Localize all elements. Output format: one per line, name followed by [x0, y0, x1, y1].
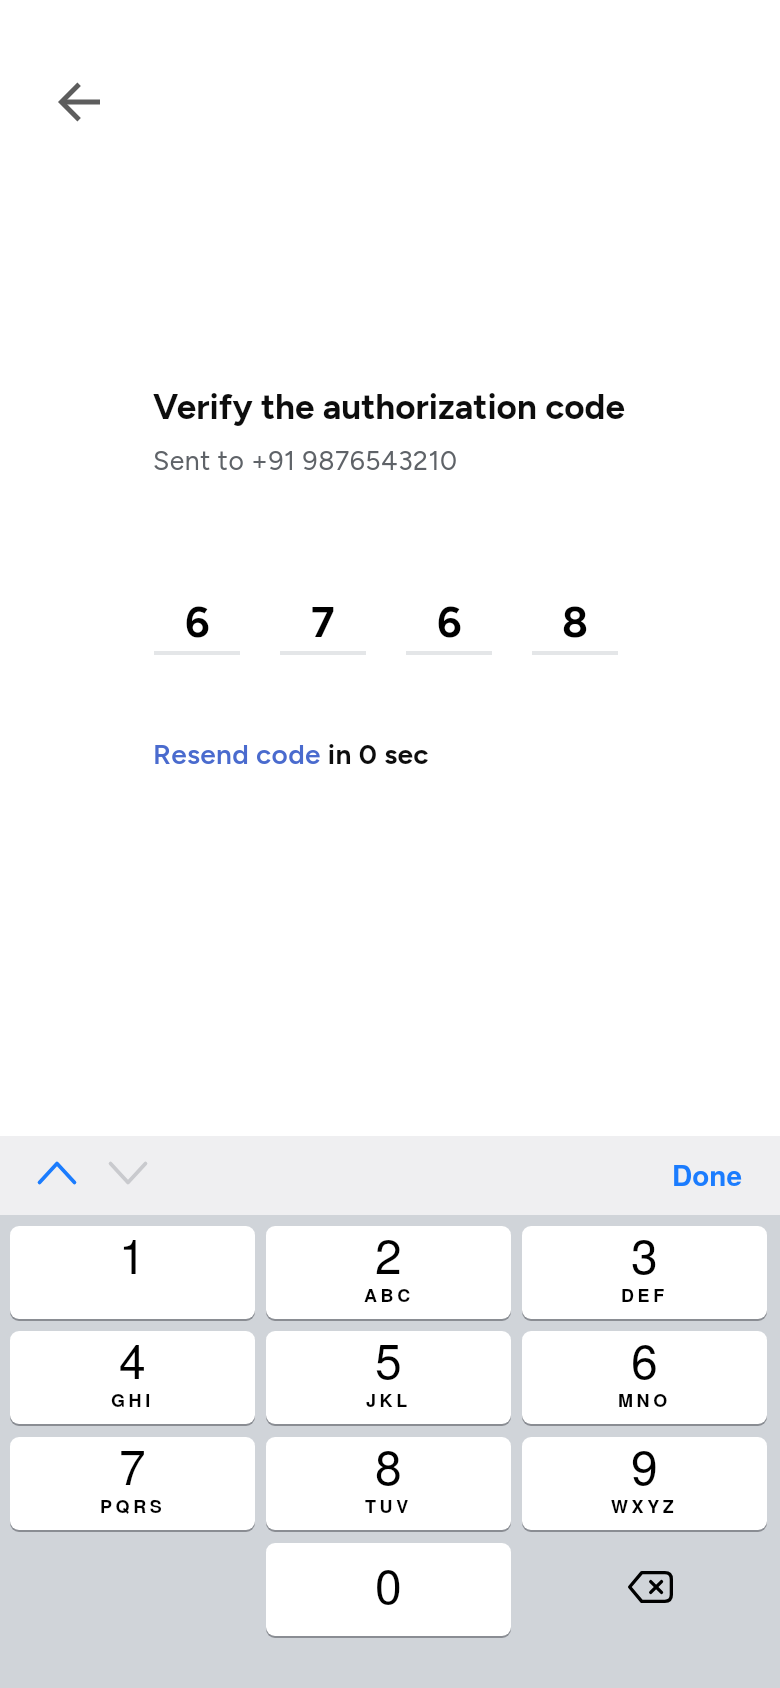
staticText: ABC: [364, 1282, 414, 1308]
staticText: Resend code in 0 sec: [153, 737, 429, 771]
staticText: 8: [375, 1437, 402, 1499]
staticText: 0: [375, 1549, 402, 1618]
staticText: 4: [119, 1331, 146, 1393]
button[interactable]: Back: [39, 62, 119, 142]
staticText: 7: [119, 1437, 146, 1499]
button[interactable]: Backspace: [528, 1540, 773, 1634]
staticText: 3: [631, 1226, 658, 1288]
staticText: 5: [375, 1331, 402, 1393]
staticText: 1: [119, 1226, 146, 1288]
button[interactable]: 7: [10, 1437, 255, 1530]
button[interactable]: 2: [266, 1226, 511, 1319]
button[interactable]: 6: [154, 597, 240, 655]
button[interactable]: 8: [266, 1437, 511, 1530]
button[interactable]: 7: [280, 597, 366, 655]
staticText: JKL: [366, 1387, 411, 1413]
staticText: Verify the authorization code: [153, 386, 625, 428]
staticText: 6: [437, 597, 462, 648]
button[interactable]: Next field: [90, 1146, 166, 1200]
button[interactable]: 4: [10, 1331, 255, 1424]
button[interactable]: 8: [532, 597, 618, 655]
button[interactable]: Previous field: [19, 1146, 95, 1200]
staticText: 9: [631, 1437, 658, 1499]
button[interactable]: 1: [10, 1226, 255, 1319]
button[interactable]: 6: [406, 597, 492, 655]
staticText: 6: [185, 597, 210, 648]
button[interactable]: Resend code in 0 sec: [153, 737, 429, 771]
staticText: MNO: [618, 1387, 671, 1413]
staticText: PQRS: [100, 1493, 166, 1519]
button[interactable]: 6: [522, 1331, 767, 1424]
staticText: 8: [562, 597, 589, 648]
staticText: WXYZ: [611, 1493, 678, 1519]
button[interactable]: 3: [522, 1226, 767, 1319]
button[interactable]: 0: [266, 1543, 511, 1636]
button[interactable]: 5: [266, 1331, 511, 1424]
staticText: Sent to +91 9876543210: [153, 445, 458, 477]
staticText: DEF: [621, 1282, 668, 1308]
staticText: 2: [375, 1226, 402, 1288]
button[interactable]: 9: [522, 1437, 767, 1530]
staticText: GHI: [111, 1387, 154, 1413]
staticText: TUV: [365, 1493, 412, 1519]
staticText: Done: [672, 1154, 743, 1194]
staticText: 6: [631, 1331, 658, 1393]
button[interactable]: Done: [655, 1146, 760, 1205]
staticText: 7: [311, 597, 335, 648]
